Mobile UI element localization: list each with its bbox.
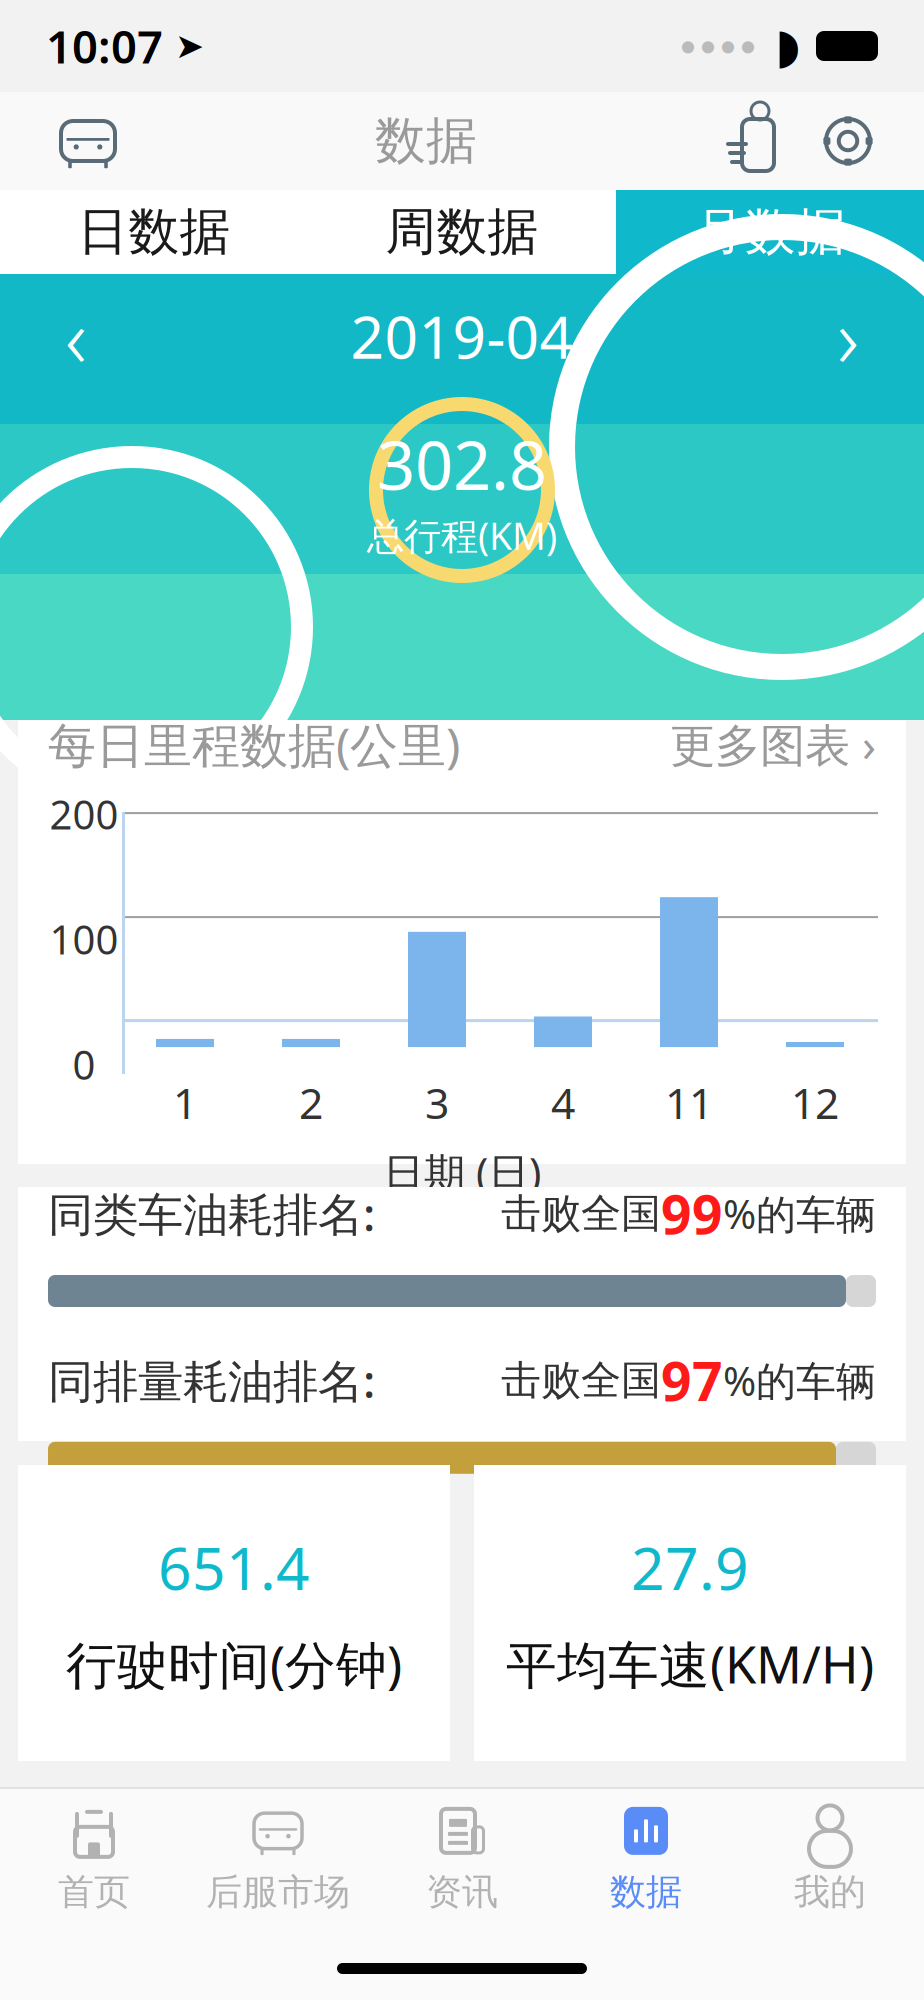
button[interactable]: 首页 — [2, 1789, 186, 1929]
staticText: 日数据 — [77, 201, 230, 263]
button[interactable]: Next month — [800, 296, 896, 376]
button[interactable]: 周数据 — [308, 190, 616, 274]
staticText: 资讯 — [426, 1870, 498, 1914]
staticText: 同类车油耗排名: — [48, 1183, 375, 1244]
staticText: 击败全国 — [501, 1189, 661, 1238]
staticText: 平均车速(KM/H) — [506, 1630, 874, 1698]
staticText: 27.9 — [631, 1528, 749, 1606]
button[interactable]: 后服市场 — [186, 1789, 370, 1929]
staticText: 数据 — [610, 1870, 682, 1914]
staticText: 3 — [425, 1074, 449, 1131]
button[interactable]: 日数据 — [0, 190, 308, 274]
staticText: ● ● ● ● — [681, 37, 755, 55]
staticText: 302.8 — [377, 420, 547, 508]
staticText: 0 — [72, 1038, 95, 1091]
staticText: 2019-04 — [350, 297, 573, 375]
staticText: 2 — [299, 1074, 323, 1131]
button[interactable]: Remote control — [704, 92, 800, 190]
staticText: ➤ — [175, 26, 204, 66]
staticText: 行驶时间(分钟) — [66, 1630, 402, 1698]
staticText: 击败全国 — [501, 1356, 661, 1405]
staticText: 我的 — [794, 1870, 866, 1914]
button[interactable]: 数据 — [554, 1789, 738, 1929]
staticText: ‹ — [65, 281, 87, 391]
staticText: 651.4 — [158, 1528, 310, 1606]
button[interactable]: Settings — [800, 92, 896, 190]
staticText: 每日里程数据(公里) — [48, 712, 460, 776]
staticText: 97 — [661, 1345, 723, 1416]
staticText: 同排量耗油排名: — [48, 1350, 375, 1410]
staticText: 首页 — [58, 1870, 130, 1914]
staticText: 月数据 — [693, 201, 846, 263]
button[interactable]: 我的 — [738, 1789, 922, 1929]
button[interactable]: Previous month — [28, 296, 124, 376]
staticText: › — [837, 281, 859, 391]
staticText: 100 — [49, 912, 118, 966]
staticText: ◗ — [775, 19, 800, 73]
staticText: 11 — [665, 1074, 713, 1131]
staticText: 周数据 — [385, 201, 538, 263]
staticText: 总行程(KM) — [367, 510, 557, 560]
staticText: 10:07 — [46, 16, 163, 76]
staticText: 12 — [791, 1074, 839, 1131]
staticText: 日期 (日) — [383, 1145, 541, 1200]
button[interactable]: 月数据 — [616, 190, 924, 274]
staticText: 4 — [551, 1074, 575, 1131]
button[interactable]: 资讯 — [370, 1789, 554, 1929]
staticText: 更多图表 › — [670, 714, 876, 774]
staticText: 1 — [173, 1074, 197, 1131]
staticText: 99 — [661, 1178, 723, 1249]
staticText: %的车辆 — [723, 1354, 876, 1407]
button[interactable]: 更多图表 › — [670, 714, 876, 774]
staticText: %的车辆 — [723, 1187, 876, 1240]
button[interactable]: My vehicle — [28, 92, 148, 190]
staticText: 数据 — [375, 110, 477, 172]
staticText: 后服市场 — [206, 1870, 350, 1914]
staticText: 200 — [49, 787, 118, 840]
